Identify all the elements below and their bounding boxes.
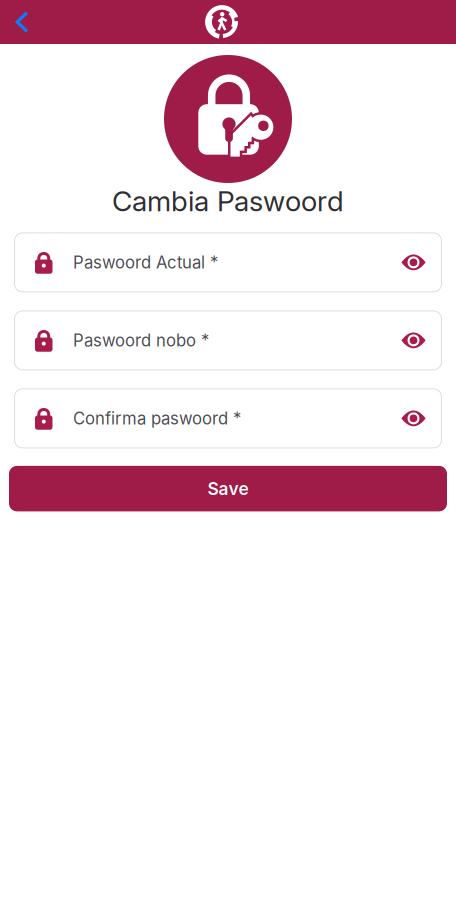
button[interactable]: Save — [9, 466, 447, 511]
button[interactable]: Show password — [390, 239, 436, 285]
staticText: Cambia Paswoord — [112, 184, 344, 218]
button[interactable]: Show password — [390, 317, 436, 363]
staticText: Confirma paswoord * — [73, 408, 241, 428]
staticText: Paswoord Actual * — [73, 252, 218, 272]
staticText: Save — [207, 478, 248, 499]
staticText: Paswoord nobo * — [73, 330, 209, 350]
button[interactable]: Show password — [390, 395, 436, 441]
button[interactable]: Back — [0, 0, 44, 44]
